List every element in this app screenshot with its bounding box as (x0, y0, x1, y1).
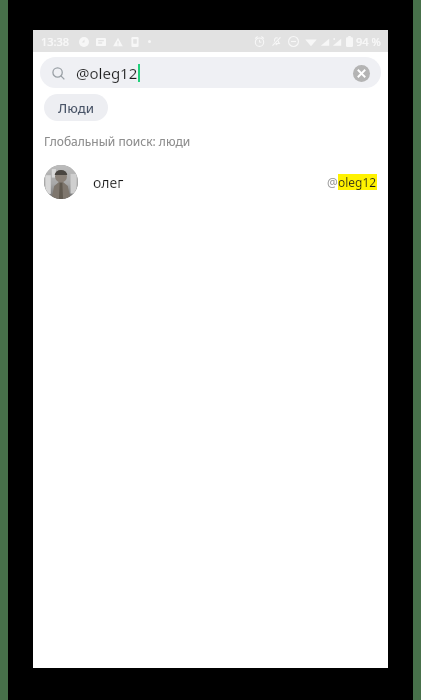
staticText: Глобальный поиск: люди (44, 133, 191, 149)
staticText: @oleg12 (76, 63, 138, 83)
staticText: @ (327, 174, 338, 190)
staticText: 13:38 (41, 34, 70, 49)
button[interactable]: Clear search (349, 61, 373, 85)
button[interactable]: олег (33, 159, 388, 205)
staticText: Люди (58, 99, 94, 117)
staticText: 94 % (356, 34, 381, 49)
button[interactable]: @oleg12 (40, 57, 381, 88)
staticText: олег (93, 173, 124, 192)
staticText: oleg12 (338, 174, 377, 190)
button[interactable]: Люди (44, 94, 108, 121)
